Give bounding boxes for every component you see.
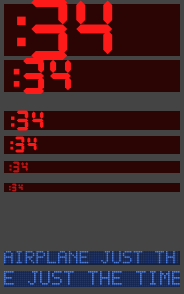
button[interactable]: Time display small: [4, 136, 180, 154]
button[interactable]: Time display large: [4, 60, 180, 92]
button[interactable]: Scrolling message lower: [4, 271, 180, 287]
button[interactable]: Time display extra large: [4, 4, 180, 56]
button[interactable]: Time display medium: [4, 111, 180, 130]
button[interactable]: Time display tiny: [4, 161, 180, 173]
button[interactable]: Scrolling message upper: [4, 251, 180, 265]
button[interactable]: Time display micro: [4, 183, 180, 192]
